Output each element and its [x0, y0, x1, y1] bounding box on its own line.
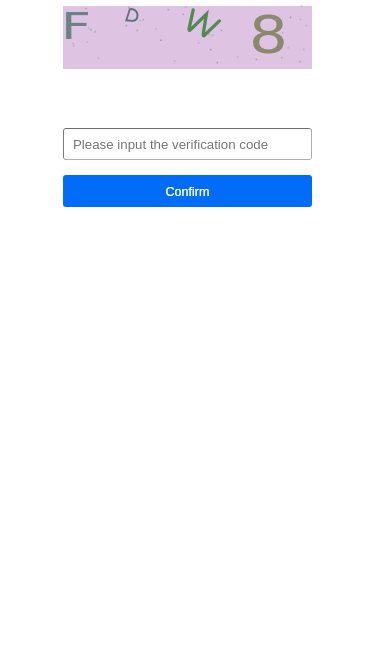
staticText: F — [61, 5, 91, 48]
staticText: 8 — [249, 4, 288, 64]
staticText: Confirm — [165, 185, 210, 199]
button[interactable]: Please input the verification code — [63, 128, 312, 160]
staticText: Please input the verification code — [73, 137, 269, 152]
button[interactable]: Refresh verification code — [63, 6, 312, 69]
button[interactable]: Confirm — [63, 175, 312, 207]
